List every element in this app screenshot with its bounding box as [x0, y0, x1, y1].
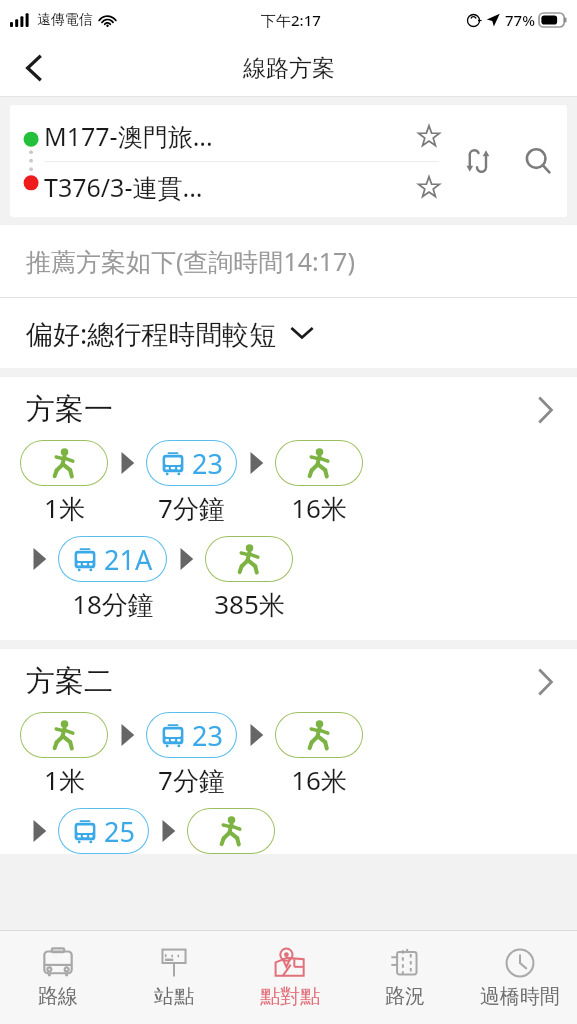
button[interactable]: 路況	[347, 931, 462, 1024]
staticText: 點對點	[260, 984, 320, 1009]
staticText: 7分鐘	[158, 490, 225, 526]
button[interactable]: 過橋時間	[462, 931, 577, 1024]
button[interactable]: 偏好:總行程時間較短	[0, 298, 577, 368]
button[interactable]: Swap	[451, 132, 509, 190]
staticText: 路線	[38, 984, 78, 1009]
staticText: 16米	[291, 490, 347, 526]
button[interactable]: M177-澳門旅...	[44, 111, 451, 161]
button[interactable]: Back	[8, 42, 60, 94]
staticText: 路況	[385, 984, 425, 1009]
staticText: 下午2:17	[261, 10, 321, 30]
staticText: T376/3-連貫...	[44, 170, 407, 204]
staticText: 方案二	[26, 663, 113, 700]
button[interactable]: 點對點	[232, 931, 347, 1024]
staticText: 16米	[291, 762, 347, 798]
staticText: 77%	[505, 10, 535, 30]
button[interactable]: T376/3-連貫...	[44, 162, 451, 212]
staticText: 385米	[214, 586, 285, 622]
staticText: 線路方案	[243, 54, 335, 83]
staticText: 1米	[44, 762, 85, 798]
staticText: 21A	[104, 541, 153, 578]
button[interactable]: Favourite origin	[407, 114, 451, 158]
staticText: 遠傳電信	[37, 11, 93, 29]
button[interactable]: 方案二	[0, 649, 577, 854]
staticText: 方案一	[26, 391, 113, 428]
staticText: 7分鐘	[158, 762, 225, 798]
staticText: 25	[104, 813, 135, 850]
staticText: 18分鐘	[72, 586, 154, 622]
button[interactable]: 方案一	[0, 377, 577, 640]
button[interactable]: Search	[509, 132, 567, 190]
button[interactable]: 站點	[116, 931, 232, 1024]
staticText: 23	[192, 445, 223, 482]
button[interactable]: 路線	[0, 931, 116, 1024]
staticText: 偏好:總行程時間較短	[26, 315, 277, 352]
staticText: 23	[192, 717, 223, 754]
staticText: M177-澳門旅...	[44, 119, 407, 153]
button[interactable]: Favourite destination	[407, 165, 451, 209]
staticText: 站點	[154, 984, 194, 1009]
staticText: 推薦方案如下(查詢時間14:17)	[26, 244, 355, 278]
staticText: 過橋時間	[480, 984, 560, 1009]
staticText: 1米	[44, 490, 85, 526]
